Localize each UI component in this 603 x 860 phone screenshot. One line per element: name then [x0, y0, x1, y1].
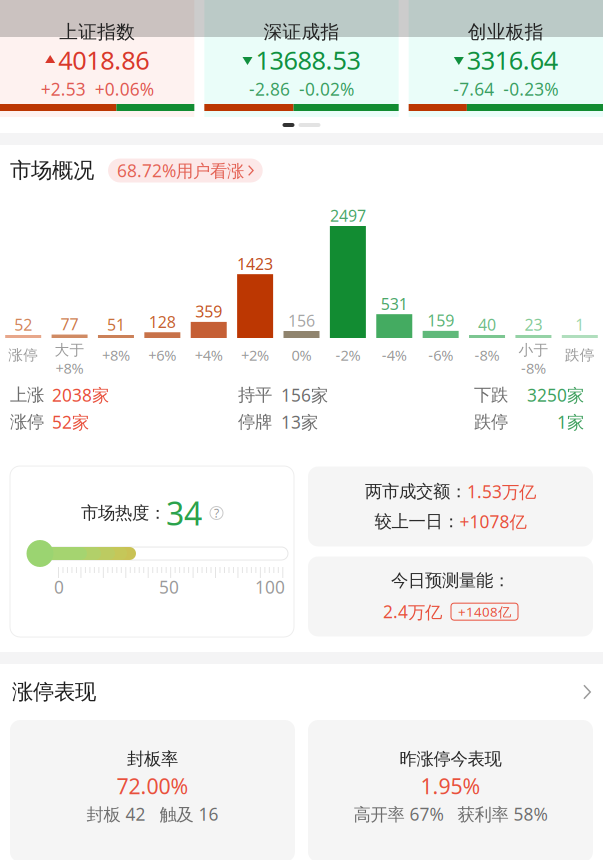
staticText: 高开率 67%: [353, 802, 443, 825]
staticText: -2.86: [249, 77, 290, 100]
staticText: 封板率: [127, 748, 178, 770]
staticText: 68.72%用户看涨: [117, 159, 244, 182]
staticText: +8%: [56, 358, 84, 378]
staticText: 1: [575, 314, 584, 335]
staticText: -8%: [474, 345, 499, 365]
staticText: 51: [107, 314, 125, 335]
staticText: 持平: [238, 384, 272, 406]
staticText: -7.64: [453, 77, 494, 100]
staticText: +0.06%: [95, 77, 154, 100]
staticText: 52: [14, 314, 32, 335]
staticText: 72.00%: [116, 772, 188, 800]
staticText: 0: [54, 575, 64, 598]
staticText: 1家: [557, 410, 584, 433]
staticText: 128: [149, 311, 176, 332]
staticText: -2%: [335, 345, 360, 365]
staticText: -4%: [382, 345, 407, 365]
staticText: 4018.86: [58, 43, 149, 77]
staticText: 13688.53: [255, 43, 360, 77]
staticText: +4%: [195, 345, 223, 365]
staticText: 今日预测量能：: [391, 570, 510, 591]
staticText: +6%: [148, 345, 176, 365]
staticText: 3250家: [527, 383, 584, 406]
staticText: 下跌: [474, 384, 508, 406]
staticText: 深证成指: [263, 20, 339, 43]
staticText: 上证指数: [59, 20, 135, 43]
staticText: 1.53万亿: [467, 480, 536, 503]
staticText: 156家: [281, 383, 328, 406]
staticText: 涨停: [8, 346, 38, 364]
staticText: 小于: [518, 341, 548, 359]
staticText: 3316.64: [467, 43, 558, 77]
staticText: 77: [61, 313, 79, 335]
staticText: 359: [195, 301, 222, 322]
staticText: 两市成交额：: [365, 481, 467, 502]
staticText: -0.23%: [503, 77, 558, 100]
button[interactable]: 涨停表现: [0, 664, 603, 720]
staticText: 创业板指: [468, 20, 544, 43]
staticText: 触及 16: [159, 802, 218, 825]
staticText: -6%: [428, 345, 453, 365]
staticText: 1.95%: [420, 772, 480, 800]
staticText: 封板 42: [86, 802, 145, 825]
staticText: +1078亿: [459, 510, 526, 533]
button[interactable]: 创业板指: [409, 0, 603, 117]
staticText: +2%: [241, 345, 269, 365]
staticText: 较上一日：: [374, 511, 459, 532]
staticText: 40: [478, 314, 496, 335]
staticText: 100: [255, 575, 285, 598]
staticText: -0.02%: [299, 77, 354, 100]
staticText: 跌停: [474, 411, 508, 433]
staticText: 2497: [330, 205, 366, 226]
staticText: 52家: [52, 410, 89, 433]
staticText: 昨涨停今表现: [399, 748, 501, 770]
staticText: +8%: [102, 345, 130, 365]
staticText: 市场热度：: [81, 502, 166, 524]
staticText: 大于: [55, 341, 85, 359]
staticText: 2038家: [52, 383, 109, 406]
staticText: 上涨: [10, 384, 44, 406]
staticText: -8%: [521, 358, 546, 378]
staticText: 0%: [291, 345, 311, 365]
staticText: 1423: [237, 253, 273, 274]
staticText: ?: [214, 505, 219, 521]
staticText: 涨停表现: [12, 679, 96, 705]
staticText: 跌停: [565, 346, 595, 364]
staticText: 涨停: [10, 411, 44, 433]
button[interactable]: 上证指数: [0, 0, 194, 117]
staticText: 停牌: [238, 411, 272, 433]
staticText: 2.4万亿: [383, 600, 442, 623]
button[interactable]: 68.72%用户看涨: [108, 158, 263, 182]
staticText: 531: [381, 293, 408, 314]
staticText: 获利率 58%: [457, 802, 547, 825]
staticText: 50: [159, 575, 179, 598]
button[interactable]: 深证成指: [204, 0, 399, 117]
staticText: 156: [288, 310, 315, 331]
staticText: 34: [166, 492, 202, 534]
staticText: 13家: [281, 410, 318, 433]
staticText: 市场概况: [10, 157, 94, 184]
staticText: +1408亿: [458, 603, 511, 620]
staticText: +2.53: [41, 77, 86, 100]
staticText: 159: [427, 310, 454, 331]
staticText: 23: [524, 314, 542, 335]
